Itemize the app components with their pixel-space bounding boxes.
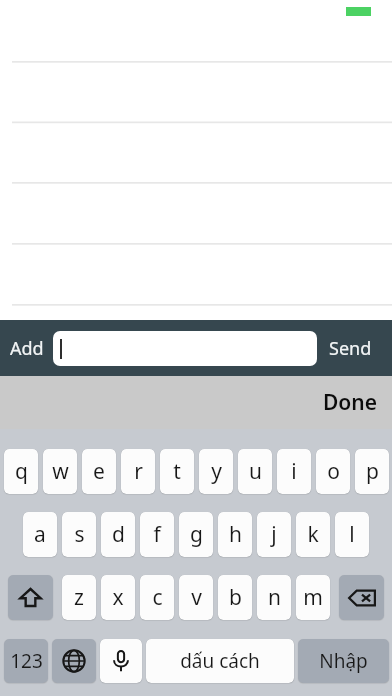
staticText: p	[366, 457, 379, 486]
button[interactable]: j	[257, 512, 291, 557]
button[interactable]: Send	[317, 320, 384, 376]
staticText: g	[190, 520, 203, 549]
staticText: h	[229, 520, 242, 549]
button[interactable]: o	[316, 449, 350, 494]
staticText: Send	[329, 336, 372, 361]
staticText: o	[327, 457, 340, 486]
button[interactable]: 123	[4, 639, 48, 683]
staticText: 123	[10, 648, 43, 674]
staticText: v	[191, 583, 202, 612]
button[interactable]: Done	[309, 380, 392, 425]
button[interactable]: b	[218, 575, 252, 620]
button[interactable]: h	[218, 512, 252, 557]
button[interactable]: p	[355, 449, 389, 494]
button[interactable]: Message text field	[53, 331, 317, 366]
button[interactable]: a	[23, 512, 57, 557]
staticText: n	[268, 583, 281, 612]
staticText: w	[52, 457, 69, 486]
staticText: t	[173, 457, 181, 486]
button[interactable]: y	[199, 449, 233, 494]
staticText: q	[15, 457, 28, 486]
staticText: Nhập	[319, 648, 368, 674]
staticText: u	[249, 457, 262, 486]
staticText: r	[134, 457, 143, 486]
staticText: s	[74, 520, 85, 549]
staticText: l	[349, 520, 355, 549]
button[interactable]: k	[296, 512, 330, 557]
staticText: d	[112, 520, 125, 549]
button[interactable]: r	[121, 449, 155, 494]
button[interactable]: i	[277, 449, 311, 494]
button[interactable]: u	[238, 449, 272, 494]
button[interactable]: Switch keyboard language	[52, 639, 96, 683]
staticText: k	[307, 520, 319, 549]
staticText: f	[153, 520, 161, 549]
staticText: i	[291, 457, 297, 486]
button[interactable]: e	[82, 449, 116, 494]
button[interactable]: w	[43, 449, 77, 494]
button[interactable]: Backspace	[339, 575, 384, 620]
staticText: Add	[10, 336, 44, 361]
button[interactable]: n	[257, 575, 291, 620]
button[interactable]: z	[62, 575, 96, 620]
staticText: dấu cách	[180, 648, 260, 674]
button[interactable]: v	[179, 575, 213, 620]
staticText: c	[152, 583, 163, 612]
button[interactable]: q	[4, 449, 38, 494]
button[interactable]: f	[140, 512, 174, 557]
staticText: b	[229, 583, 242, 612]
button[interactable]: s	[62, 512, 96, 557]
button[interactable]: x	[101, 575, 135, 620]
button[interactable]: dấu cách	[146, 639, 294, 683]
button[interactable]: Shift	[8, 575, 53, 620]
button[interactable]: m	[296, 575, 330, 620]
staticText: m	[303, 583, 323, 612]
button[interactable]: d	[101, 512, 135, 557]
staticText: j	[271, 520, 277, 549]
button[interactable]: l	[335, 512, 369, 557]
staticText: a	[34, 520, 46, 549]
button[interactable]: g	[179, 512, 213, 557]
button[interactable]: Add	[0, 320, 53, 376]
button[interactable]: Voice input	[100, 639, 142, 683]
button[interactable]: c	[140, 575, 174, 620]
staticText: e	[93, 457, 105, 486]
staticText: z	[74, 583, 84, 612]
staticText: Done	[323, 388, 378, 417]
staticText: y	[211, 457, 222, 486]
button[interactable]: t	[160, 449, 194, 494]
staticText: x	[112, 583, 124, 612]
button[interactable]: Nhập	[298, 639, 389, 683]
